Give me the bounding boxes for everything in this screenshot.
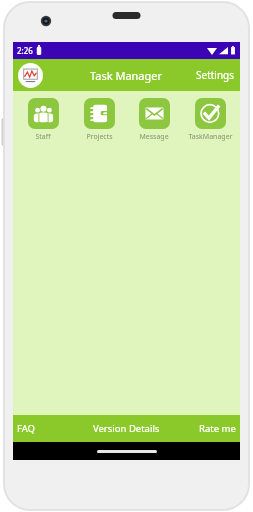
button[interactable]: Settings (191, 59, 240, 91)
button[interactable]: Projects (73, 98, 125, 142)
button[interactable]: Rate me (177, 415, 240, 442)
staticText: Settings (196, 68, 235, 82)
button[interactable]: Version Details (76, 415, 177, 442)
staticText: Version Details (93, 422, 160, 435)
staticText: Staff (35, 132, 51, 142)
staticText: FAQ (17, 422, 36, 435)
button[interactable]: App logo (18, 63, 43, 88)
staticText: Message (139, 132, 169, 142)
button[interactable]: Message (128, 98, 180, 142)
button[interactable]: TaskManager (184, 98, 236, 142)
staticText: Rate me (199, 422, 236, 435)
button[interactable]: FAQ (13, 415, 76, 442)
staticText: TaskManager (188, 132, 233, 142)
button[interactable]: Home (97, 450, 157, 453)
staticText: 2:26 (17, 45, 33, 56)
staticText: Projects (86, 132, 113, 142)
staticText: Task Manager (90, 68, 163, 83)
button[interactable]: Staff (17, 98, 69, 142)
